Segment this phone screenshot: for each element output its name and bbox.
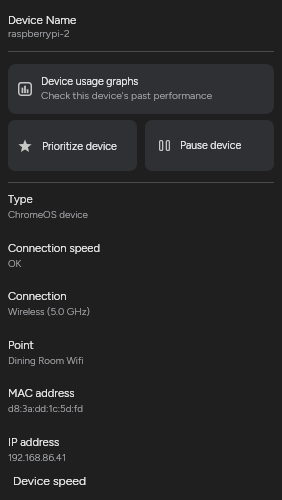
button[interactable]: MAC address: [0, 386, 282, 423]
staticText: 192.168.86.41: [8, 451, 66, 463]
button[interactable]: Point: [0, 338, 282, 375]
staticText: raspberrypi-2: [8, 27, 70, 40]
staticText: ChromeOS device: [8, 208, 88, 220]
button[interactable]: Connection speed: [0, 241, 282, 278]
staticText: Wireless (5.0 GHz): [8, 305, 90, 317]
button[interactable]: IP address: [0, 435, 282, 472]
staticText: Dining Room Wifi: [8, 354, 84, 366]
staticText: Check this device's past performance: [41, 89, 213, 102]
staticText: Pause device: [180, 139, 242, 152]
staticText: Device usage graphs: [41, 75, 139, 88]
staticText: Device speed: [13, 473, 87, 488]
staticText: OK: [8, 257, 22, 269]
button[interactable]: Type: [0, 192, 282, 229]
staticText: Device Name: [8, 13, 77, 27]
staticText: Point: [8, 338, 34, 352]
staticText: IP address: [8, 435, 60, 449]
staticText: Prioritize device: [42, 139, 117, 152]
staticText: d8:3a:dd:1c:5d:fd: [8, 402, 83, 414]
button[interactable]: Pause device: [145, 120, 274, 171]
staticText: MAC address: [8, 386, 75, 400]
button[interactable]: Prioritize device: [8, 120, 137, 171]
staticText: Connection speed: [8, 241, 101, 255]
staticText: Connection: [8, 289, 67, 303]
staticText: Type: [8, 192, 33, 206]
button[interactable]: Connection: [0, 289, 282, 326]
button[interactable]: Device usage graphs: [8, 64, 274, 114]
